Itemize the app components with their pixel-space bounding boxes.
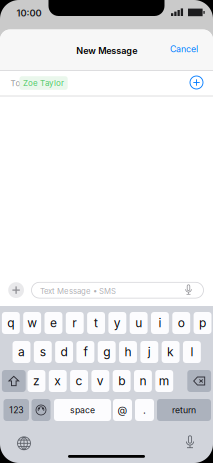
button[interactable]: Emoji	[31, 399, 50, 421]
button[interactable]: w	[23, 312, 41, 334]
staticText: x	[54, 374, 61, 388]
staticText: q	[7, 316, 14, 330]
staticText: Cancel	[170, 44, 198, 54]
staticText: i	[158, 316, 161, 330]
staticText: t	[94, 316, 98, 330]
staticText: z	[33, 374, 40, 388]
staticText: r	[72, 316, 77, 330]
button[interactable]: j	[140, 341, 158, 363]
button[interactable]: r	[66, 312, 84, 334]
button[interactable]: d	[55, 341, 73, 363]
staticText: u	[135, 316, 142, 330]
button[interactable]: i	[151, 312, 169, 334]
button[interactable]: e	[44, 312, 62, 334]
button[interactable]: q	[2, 312, 20, 334]
staticText: l	[190, 345, 193, 359]
button[interactable]: a	[12, 341, 30, 363]
button[interactable]: o	[172, 312, 190, 334]
button[interactable]: Add contact	[184, 70, 208, 94]
button[interactable]: Switch keyboard	[10, 431, 38, 455]
staticText: c	[75, 374, 82, 388]
staticText: h	[124, 345, 131, 359]
button[interactable]: u	[130, 312, 148, 334]
button[interactable]: s	[34, 341, 52, 363]
staticText: o	[178, 316, 185, 330]
staticText: Zoe Taylor	[23, 78, 64, 88]
staticText: s	[40, 345, 46, 359]
button[interactable]: Add media	[8, 282, 24, 298]
button[interactable]: n	[134, 370, 152, 392]
button[interactable]: space	[54, 399, 111, 421]
staticText: return	[172, 405, 196, 415]
staticText: New Message	[76, 45, 137, 56]
staticText: p	[199, 316, 206, 330]
staticText: @	[117, 404, 127, 416]
button[interactable]: y	[108, 312, 126, 334]
button[interactable]: f	[76, 341, 94, 363]
staticText: space	[70, 405, 95, 415]
button[interactable]: return	[157, 399, 211, 421]
staticText: e	[50, 316, 57, 330]
staticText: b	[118, 374, 125, 388]
button[interactable]: g	[98, 341, 116, 363]
button[interactable]: v	[91, 370, 109, 392]
staticText: k	[167, 345, 174, 359]
button[interactable]: h	[119, 341, 137, 363]
staticText: j	[148, 345, 151, 359]
staticText: a	[18, 345, 25, 359]
button[interactable]: k	[162, 341, 179, 363]
button[interactable]: c	[70, 370, 88, 392]
staticText: .	[143, 404, 146, 416]
staticText: n	[139, 374, 146, 388]
button[interactable]: p	[194, 312, 211, 334]
button[interactable]: Cancel	[165, 37, 203, 61]
staticText: y	[114, 316, 121, 330]
button[interactable]: Delete	[187, 370, 211, 392]
staticText: d	[61, 345, 68, 359]
staticText: To:	[10, 78, 22, 88]
staticText: 123	[9, 405, 23, 415]
staticText: w	[27, 316, 37, 330]
staticText: 10:00	[16, 7, 41, 19]
staticText: v	[97, 374, 104, 388]
button[interactable]: l	[183, 341, 201, 363]
button[interactable]: Shift	[2, 370, 26, 392]
button[interactable]: @	[113, 399, 132, 421]
button[interactable]: .	[135, 399, 154, 421]
button[interactable]: b	[113, 370, 131, 392]
button[interactable]: x	[49, 370, 67, 392]
staticText: Text Message • SMS	[40, 286, 116, 296]
staticText: m	[159, 374, 170, 388]
button[interactable]: 123	[3, 399, 29, 421]
button[interactable]: Dictate	[176, 430, 204, 454]
staticText: g	[103, 345, 110, 359]
button[interactable]: m	[155, 370, 173, 392]
staticText: f	[83, 345, 87, 359]
button[interactable]: z	[27, 370, 45, 392]
button[interactable]: t	[87, 312, 105, 334]
